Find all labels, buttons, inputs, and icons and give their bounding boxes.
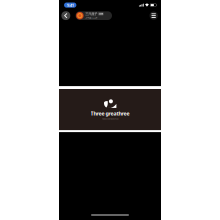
staticText: Three greathree — [90, 110, 129, 117]
button[interactable]: More — [149, 11, 158, 20]
button[interactable]: Return to call — [64, 2, 76, 8]
staticText: 直播 — [99, 12, 103, 15]
button[interactable]: Back — [61, 11, 70, 20]
button[interactable]: 三只燕子 — [75, 11, 112, 20]
staticText: 三只燕子 — [85, 12, 97, 16]
staticText: 9:41 — [67, 2, 74, 8]
staticText: T H R E E A N O T H E R S P A C E — [101, 117, 118, 120]
staticText: 人气值 9.6万 — [85, 16, 97, 19]
